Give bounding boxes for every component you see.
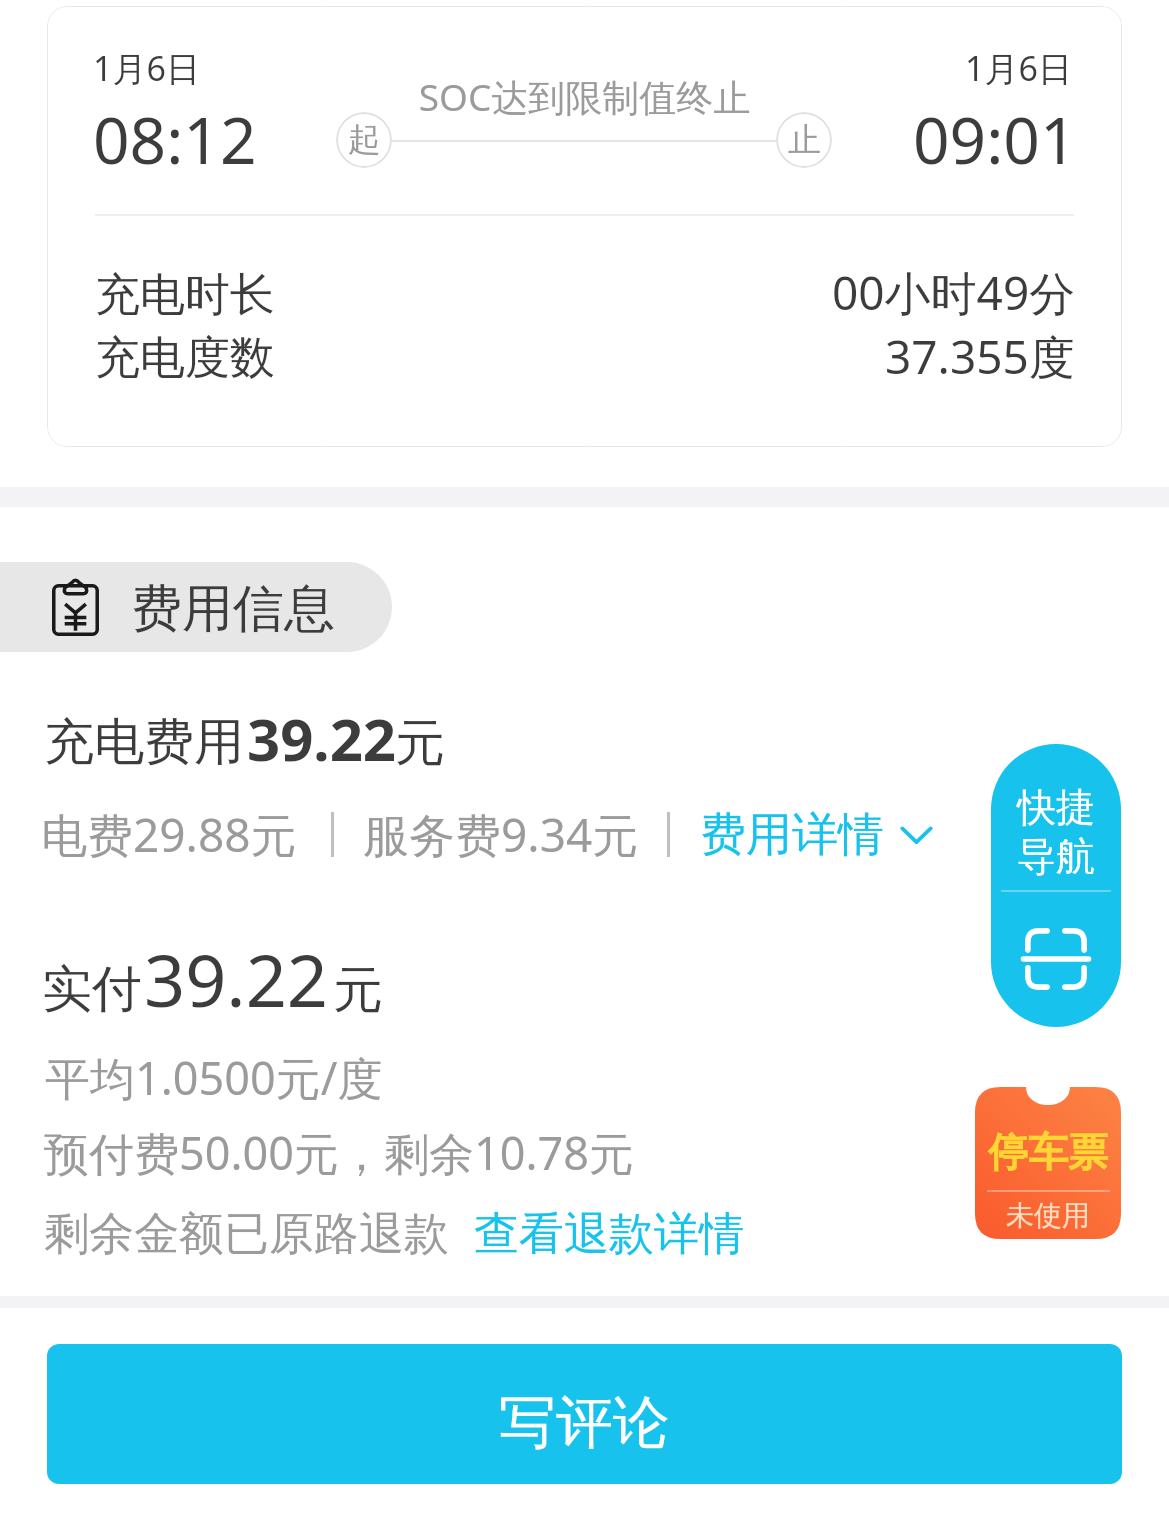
staticText: 起	[348, 119, 381, 161]
staticText: 充电时长	[95, 267, 275, 324]
staticText: 止	[788, 119, 821, 161]
staticText: 08:12	[93, 96, 257, 183]
button[interactable]: 查看退款详情	[474, 1206, 744, 1263]
button[interactable]: 快捷导航	[991, 744, 1121, 1027]
staticText: 39.22	[144, 930, 329, 1028]
staticText: SOC达到限制值终止	[0, 71, 1169, 122]
button[interactable]: 费用详情	[700, 806, 933, 864]
staticText: 费用详情	[700, 806, 884, 864]
staticText: 39.22	[247, 699, 397, 778]
staticText: 00小时49分	[832, 261, 1076, 324]
button[interactable]: 写评论	[47, 1344, 1122, 1484]
staticText: 电费29.88元	[41, 803, 297, 866]
staticText: 导航	[1017, 832, 1095, 881]
staticText: 09:01	[913, 96, 1077, 183]
staticText: 费用信息	[131, 577, 335, 641]
button[interactable]: 停车票	[975, 1087, 1121, 1239]
staticText: 停车票	[988, 1127, 1108, 1177]
staticText: 元	[395, 712, 445, 775]
staticText: 元	[333, 959, 383, 1022]
staticText: 充电费用	[44, 711, 244, 774]
staticText: 快捷	[1017, 783, 1095, 832]
staticText: 1月6日	[965, 45, 1072, 91]
staticText: 实付	[42, 958, 142, 1021]
staticText: 剩余金额已原路退款	[44, 1206, 449, 1263]
staticText: 37.355度	[885, 325, 1075, 388]
staticText: 未使用	[1006, 1198, 1090, 1233]
staticText: 预付费50.00元，剩余10.78元	[44, 1122, 635, 1183]
staticText: 1月6日	[93, 45, 200, 91]
staticText: 平均1.0500元/度	[45, 1047, 383, 1108]
staticText: 写评论	[499, 1387, 670, 1459]
staticText: 服务费9.34元	[363, 803, 639, 866]
staticText: 充电度数	[95, 330, 275, 387]
